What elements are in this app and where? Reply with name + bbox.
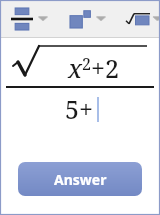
- staticText: Answer: [54, 170, 107, 189]
- staticText: 5+: [65, 92, 94, 126]
- button[interactable]: Answer: [18, 162, 142, 196]
- button[interactable]: Square root: [123, 5, 153, 33]
- button[interactable]: Fraction: [9, 5, 35, 33]
- staticText: x2+2: [68, 51, 120, 85]
- button[interactable]: Exponent: [67, 5, 93, 33]
